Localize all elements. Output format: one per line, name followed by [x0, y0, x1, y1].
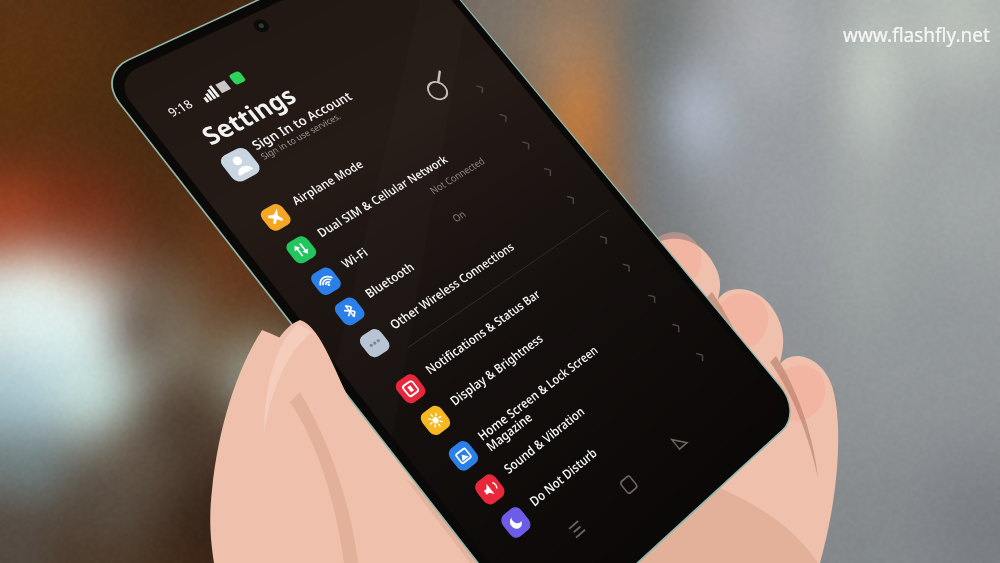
- button[interactable]: [0, 0, 1000, 563]
